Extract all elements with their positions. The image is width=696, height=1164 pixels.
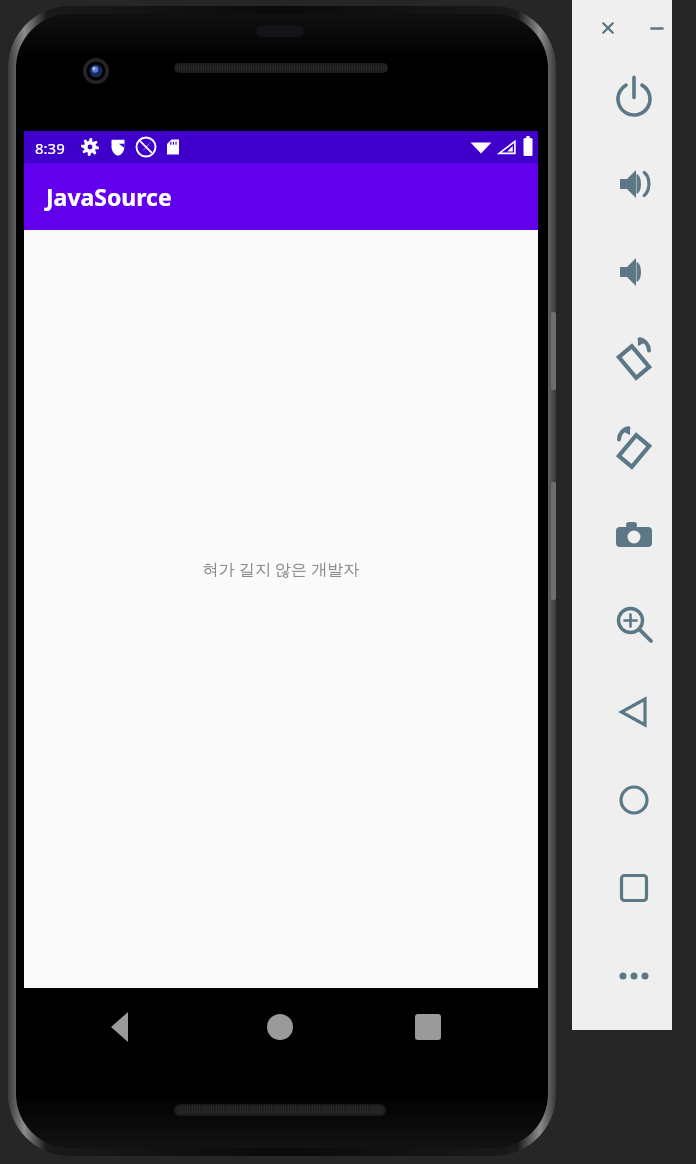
button[interactable]: Power bbox=[609, 71, 659, 121]
button[interactable]: Minimize bbox=[643, 14, 671, 42]
staticText: JavaSource bbox=[46, 181, 172, 212]
button[interactable]: Recent apps bbox=[410, 1000, 446, 1036]
button[interactable]: Take screenshot bbox=[609, 510, 659, 560]
button[interactable]: Zoom bbox=[609, 599, 659, 649]
button[interactable]: Rotate left bbox=[609, 334, 659, 384]
button[interactable]: Back bbox=[609, 687, 659, 737]
button[interactable]: Rotate right bbox=[609, 423, 659, 473]
button[interactable]: Volume down bbox=[609, 247, 659, 297]
button[interactable]: Back bbox=[106, 1000, 142, 1036]
staticText: 혀가 길지 않은 개발자 bbox=[111, 558, 451, 588]
staticText: 8:39 bbox=[35, 138, 65, 158]
button[interactable]: Close bbox=[594, 14, 622, 42]
button[interactable]: JavaSource bbox=[24, 163, 538, 230]
button[interactable]: Home bbox=[609, 775, 659, 825]
button[interactable]: More bbox=[609, 951, 659, 1001]
button[interactable]: Volume up bbox=[609, 159, 659, 209]
button[interactable]: Home bbox=[262, 1000, 298, 1036]
button[interactable]: Overview bbox=[609, 863, 659, 913]
